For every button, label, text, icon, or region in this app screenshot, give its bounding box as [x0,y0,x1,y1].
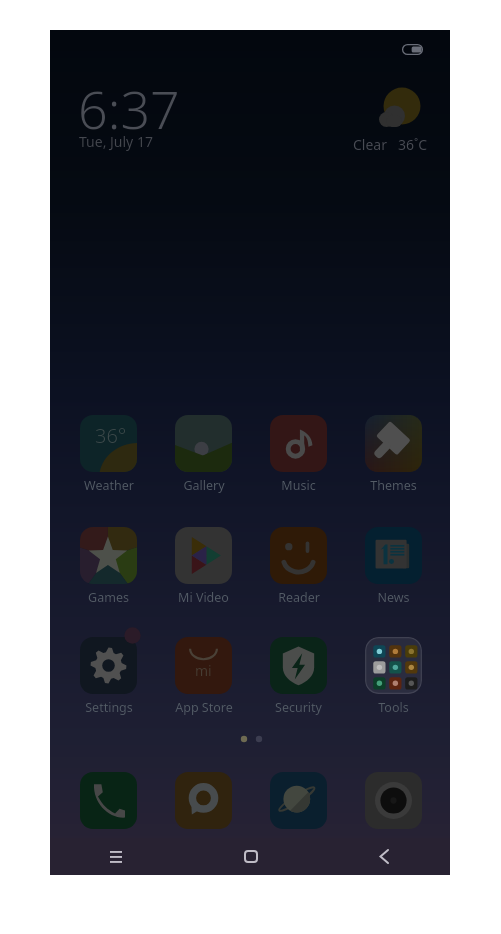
button[interactable]: Games [61,527,156,606]
button[interactable]: Recents [50,838,184,875]
staticText: 6:37 [78,73,180,144]
staticText: Tools [378,699,409,716]
staticText: Security [275,699,322,716]
button[interactable]: Phone [61,772,156,829]
staticText: Themes [370,477,417,494]
staticText: App Store [175,699,233,716]
staticText: 36° [95,422,127,449]
button[interactable]: 36° [61,415,156,494]
staticText: Music [281,477,316,494]
staticText: Gallery [183,477,225,494]
button[interactable]: mi [156,637,251,716]
staticText: Clear 36˚C [353,135,427,154]
button[interactable]: Security [251,637,346,716]
button[interactable]: Home [184,838,317,875]
button[interactable]: Reader [251,527,346,606]
staticText: Settings [85,699,133,716]
staticText: Games [88,589,129,606]
staticText: mi [195,661,212,680]
button[interactable]: Gallery [156,415,251,494]
button[interactable]: Music [251,415,346,494]
button[interactable]: Browser [251,772,346,829]
button[interactable]: Back [317,838,450,875]
button[interactable]: Camera [346,772,441,829]
staticText: Reader [278,589,320,606]
staticText: Tue, July 17 [79,132,153,151]
staticText: News [377,589,410,606]
button[interactable]: Tools [346,637,441,716]
button[interactable]: Settings [61,637,156,716]
staticText: Weather [84,477,134,494]
button[interactable]: Messaging [156,772,251,829]
button[interactable]: News [346,527,441,606]
button[interactable]: Themes [346,415,441,494]
staticText: Mi Video [178,589,229,606]
button[interactable]: Mi Video [156,527,251,606]
